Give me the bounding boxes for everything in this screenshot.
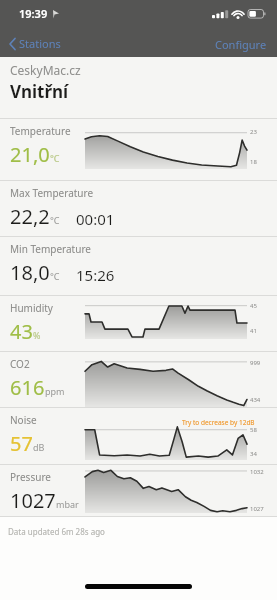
staticText: mbar [56, 498, 79, 510]
staticText: Data updated 6m 28s ago [8, 526, 105, 537]
staticText: ppm [45, 385, 65, 397]
button[interactable]: Pressure [0, 465, 277, 516]
staticText: dB [33, 441, 45, 453]
staticText: 434 [250, 396, 261, 404]
staticText: Try to decrease by 12dB [182, 418, 255, 427]
staticText: 23 [250, 128, 257, 136]
staticText: 1027 [10, 487, 56, 514]
staticText: 34 [250, 450, 257, 458]
staticText: 57 [10, 430, 33, 457]
button[interactable]: Configure [215, 37, 267, 52]
staticText: 1027 [250, 505, 264, 513]
staticText: 43 [10, 318, 33, 345]
staticText: °C [50, 152, 60, 164]
staticText: CeskyMac.cz [10, 62, 81, 78]
staticText: Stations [19, 36, 61, 51]
button[interactable]: Max Temperature [0, 181, 277, 236]
button[interactable]: Noise [0, 408, 277, 464]
button[interactable]: Temperature [0, 119, 277, 180]
staticText: 22,2 [10, 203, 50, 230]
staticText: Humidity [10, 301, 53, 315]
staticText: 00:01 [76, 209, 115, 229]
staticText: °C [50, 270, 60, 282]
staticText: Noise [10, 413, 37, 427]
staticText: 18 [250, 158, 257, 166]
staticText: Temperature [10, 124, 71, 138]
staticText: 21,0 [10, 141, 50, 168]
button[interactable]: Min Temperature [0, 237, 277, 295]
staticText: 1032 [250, 468, 264, 476]
staticText: 58 [250, 426, 257, 434]
staticText: 41 [250, 327, 257, 335]
staticText: °C [50, 214, 60, 226]
staticText: CO2 [10, 357, 30, 371]
staticText: Max Temperature [10, 186, 94, 200]
staticText: 45 [250, 302, 257, 310]
staticText: 999 [250, 359, 261, 367]
staticText: 19:39 [19, 6, 48, 21]
staticText: 15:26 [76, 265, 115, 285]
staticText: Vnitřní [10, 80, 69, 103]
staticText: Min Temperature [10, 242, 91, 256]
button[interactable]: Humidity [0, 296, 277, 351]
staticText: % [33, 329, 41, 341]
staticText: Configure [215, 37, 267, 52]
staticText: Pressure [10, 470, 51, 484]
staticText: 18,0 [10, 259, 50, 286]
button[interactable]: Stations [8, 36, 61, 51]
button[interactable]: CO2 [0, 352, 277, 407]
staticText: 616 [10, 374, 45, 401]
